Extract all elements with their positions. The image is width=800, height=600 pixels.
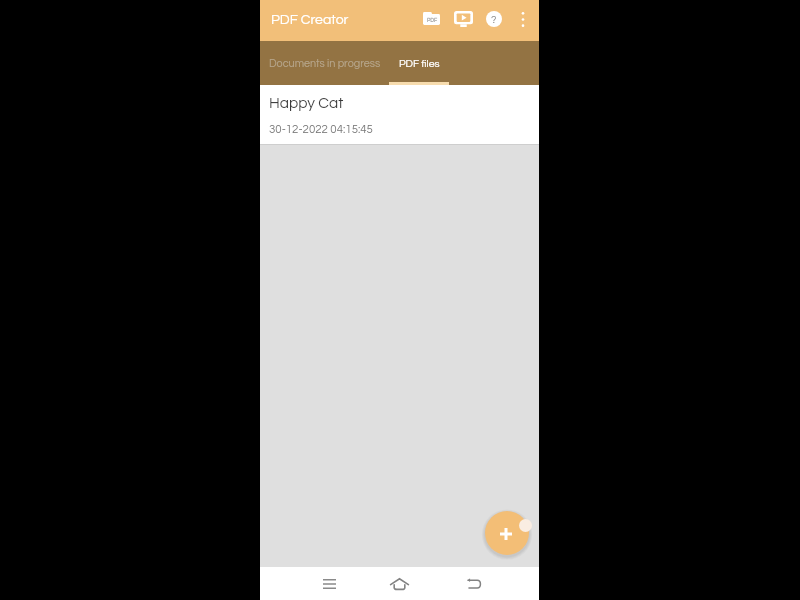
staticText: Documents in progress (269, 58, 381, 69)
button[interactable]: Home (379, 567, 420, 600)
button[interactable]: Happy Cat (260, 85, 539, 144)
button[interactable]: Add (485, 511, 529, 555)
staticText: PDF (427, 18, 437, 23)
button[interactable]: Help (479, 6, 509, 36)
staticText: PDF Creator (271, 13, 349, 27)
button[interactable]: Documents in progress (260, 41, 389, 85)
staticText: ? (491, 14, 497, 25)
button[interactable]: Recent apps (309, 567, 350, 600)
button[interactable]: Video tutorial (448, 5, 479, 36)
button[interactable]: Back (453, 567, 494, 600)
button[interactable]: More options (509, 7, 537, 35)
button[interactable]: PDF files folder (418, 6, 448, 36)
staticText: 30-12-2022 04:15:45 (269, 124, 373, 136)
staticText: PDF files (399, 58, 440, 69)
staticText: Happy Cat (269, 95, 344, 111)
button[interactable]: PDF files (389, 41, 449, 85)
